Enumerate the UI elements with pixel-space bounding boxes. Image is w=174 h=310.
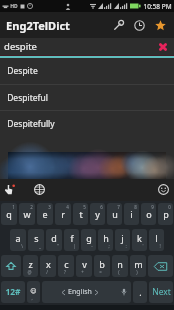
staticText: Eng2TelDict (6, 18, 70, 33)
staticText: , (31, 295, 33, 301)
staticText: Despiteful (7, 92, 48, 104)
button[interactable]: z (23, 255, 38, 277)
staticText: r (61, 208, 65, 220)
button[interactable]: Next (149, 281, 173, 303)
button[interactable]: g (81, 229, 96, 251)
staticText: HD (10, 3, 18, 10)
button[interactable]: o (141, 203, 156, 225)
button[interactable]: m (130, 255, 146, 277)
button[interactable]: Emoji (155, 181, 171, 197)
button[interactable]: j (115, 229, 130, 251)
button[interactable]: Despitefully (0, 111, 174, 136)
staticText: v (82, 258, 87, 270)
staticText: s (34, 232, 39, 244)
staticText: 6 (100, 204, 103, 210)
button[interactable]: d (46, 229, 62, 251)
staticText: : (125, 243, 127, 249)
button[interactable]: Change language (31, 181, 47, 197)
staticText: 4 (66, 204, 69, 210)
staticText: despite (4, 40, 37, 53)
button[interactable]: h (98, 229, 113, 251)
staticText: ? (64, 269, 66, 275)
staticText: 5 (83, 204, 86, 210)
staticText: " (57, 243, 59, 249)
button[interactable]: l (149, 229, 164, 251)
staticText: ( (118, 269, 120, 275)
staticText: Despite (7, 65, 38, 77)
button[interactable]: v (76, 255, 92, 277)
staticText: f (70, 232, 74, 244)
staticText: 10:58 PM (143, 2, 172, 11)
staticText: p (163, 208, 169, 220)
button[interactable]: Backspace (148, 255, 173, 277)
button[interactable]: b (94, 255, 110, 277)
staticText: x (46, 258, 51, 270)
button[interactable]: Clear text (154, 38, 172, 55)
button[interactable]: k (132, 229, 147, 251)
staticText: @ (27, 269, 32, 275)
button[interactable]: Space (42, 281, 131, 303)
staticText: ) (136, 269, 138, 275)
staticText: w (23, 208, 31, 220)
button[interactable]: f (64, 229, 79, 251)
staticText: | (73, 243, 76, 249)
staticText: i (130, 208, 133, 220)
staticText: 9 (151, 204, 154, 210)
button[interactable]: r (55, 203, 71, 225)
staticText: ' (142, 243, 144, 249)
button[interactable]: q (1, 203, 17, 225)
button[interactable]: Period (133, 281, 147, 303)
staticText: a (15, 232, 21, 244)
staticText: k (137, 232, 142, 244)
staticText: n (117, 258, 123, 270)
staticText: m (134, 258, 143, 270)
staticText: . (139, 286, 142, 298)
button[interactable]: s (28, 229, 44, 251)
staticText: 12# (5, 286, 21, 298)
staticText: _ (39, 243, 41, 249)
staticText: \ (21, 243, 23, 249)
button[interactable]: Despiteful (0, 85, 174, 110)
button[interactable]: y (90, 203, 105, 225)
button[interactable]: u (107, 203, 122, 225)
button[interactable]: x (40, 255, 56, 277)
button[interactable]: n (112, 255, 128, 277)
button[interactable]: One handed mode (1, 181, 17, 197)
staticText: z (28, 258, 33, 270)
staticText: Despitefully (7, 118, 55, 130)
button[interactable]: Settings (108, 12, 129, 38)
staticText: 7 (117, 204, 120, 210)
staticText: 0 (168, 204, 171, 210)
button[interactable]: Despite (0, 58, 174, 84)
button[interactable]: History (129, 12, 150, 38)
staticText: j (121, 232, 124, 244)
button[interactable]: i (124, 203, 139, 225)
button[interactable]: p (158, 203, 173, 225)
staticText: e (42, 208, 48, 220)
staticText: 1 (12, 204, 15, 210)
staticText: y (95, 208, 100, 220)
button[interactable]: Comma (27, 281, 40, 303)
button[interactable]: a (10, 229, 26, 251)
staticText: Next (152, 286, 171, 298)
button[interactable]: w (19, 203, 35, 225)
staticText: c (64, 258, 69, 270)
button[interactable]: Numbers and symbols (1, 281, 25, 303)
staticText: 2 (30, 204, 33, 210)
staticText: / (46, 269, 48, 275)
staticText: b (99, 258, 105, 270)
button[interactable]: t (73, 203, 88, 225)
button[interactable]: e (37, 203, 53, 225)
staticText: English (68, 287, 92, 297)
staticText: t (79, 208, 83, 220)
staticText: 3 (48, 204, 51, 210)
button[interactable]: Shift (1, 255, 21, 277)
staticText: l (155, 232, 158, 244)
staticText: q (6, 208, 12, 220)
button[interactable]: Favorites (150, 12, 171, 38)
button[interactable]: c (58, 255, 74, 277)
staticText: u (112, 208, 118, 220)
